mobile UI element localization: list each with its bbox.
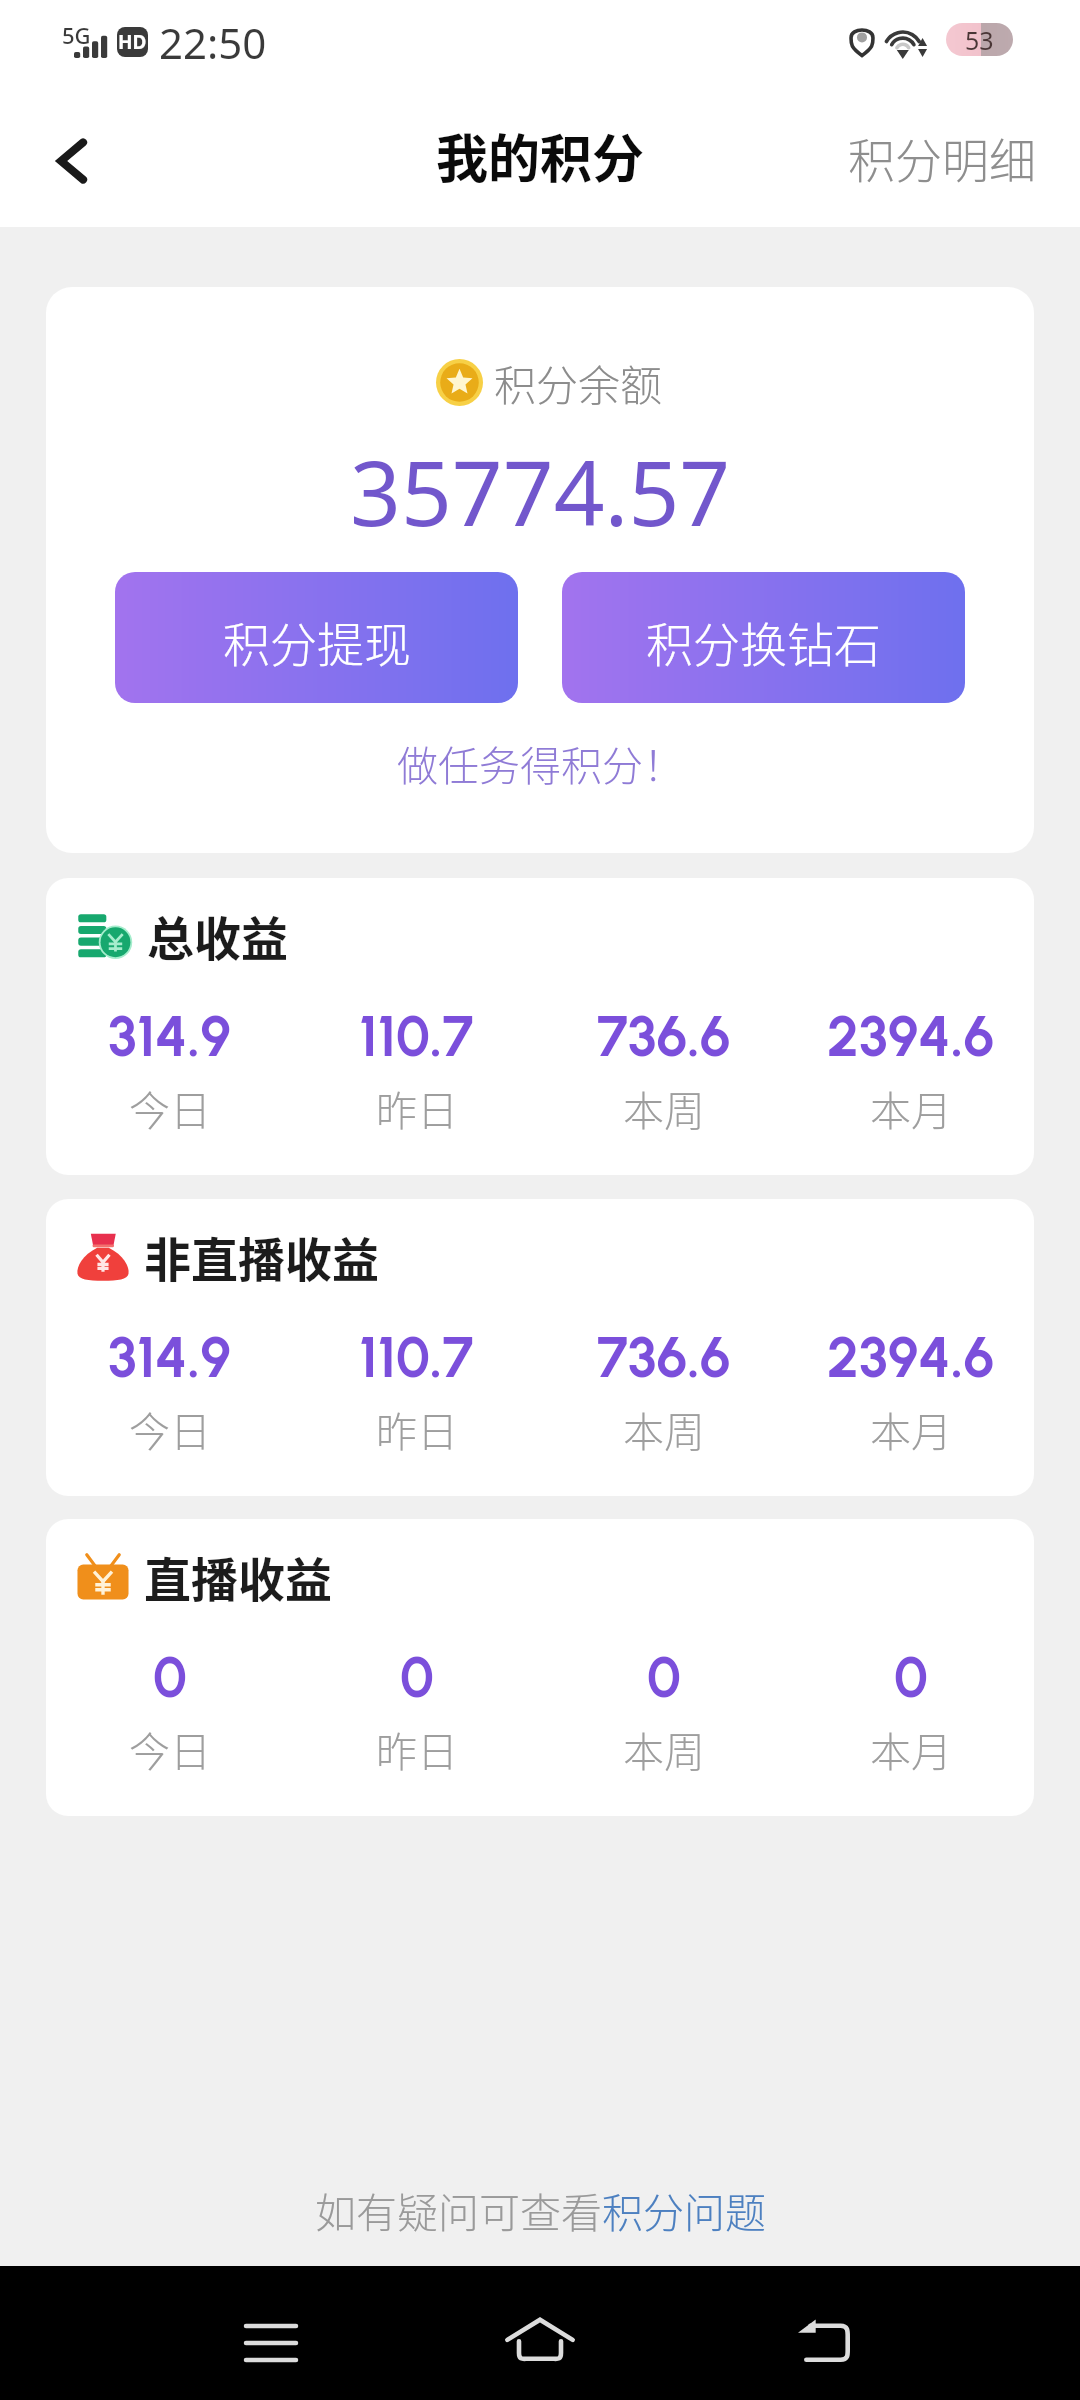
staticText: 积分余额 <box>494 352 663 413</box>
staticText: 今日 <box>129 1719 211 1778</box>
staticText: 昨日 <box>376 1078 458 1137</box>
staticText: 做任务得积分！ <box>397 733 684 792</box>
staticText: 如有疑问可查看 <box>315 2180 602 2239</box>
staticText: 314.9 <box>108 1324 231 1391</box>
button[interactable]: 积分提现 <box>115 572 518 703</box>
staticText: 本月 <box>870 1399 952 1458</box>
staticText: 0 <box>400 1644 434 1711</box>
staticText: 积分问题 <box>602 2180 766 2239</box>
staticText: 2394.6 <box>827 1324 995 1391</box>
staticText: 736.6 <box>597 1324 731 1391</box>
staticText: 736.6 <box>597 1003 731 1070</box>
button[interactable]: 积分问题 <box>602 2180 766 2239</box>
staticText: 积分提现 <box>223 607 411 675</box>
staticText: 积分明细 <box>848 123 1036 191</box>
staticText: 2394.6 <box>827 1003 995 1070</box>
staticText: 110.7 <box>359 1324 474 1391</box>
button[interactable]: Recents <box>211 2283 331 2400</box>
staticText: 本周 <box>623 1078 705 1137</box>
staticText: 积分换钻石 <box>646 607 881 675</box>
staticText: 昨日 <box>376 1399 458 1458</box>
staticText: 昨日 <box>376 1719 458 1778</box>
staticText: 本周 <box>623 1719 705 1778</box>
button[interactable]: Back <box>27 115 119 207</box>
staticText: 110.7 <box>359 1003 474 1070</box>
staticText: 0 <box>647 1644 681 1711</box>
staticText: 22:50 <box>159 14 267 71</box>
button[interactable]: 积分明细 <box>848 123 1036 191</box>
staticText: 53 <box>965 23 994 56</box>
button[interactable]: Back <box>764 2280 884 2400</box>
staticText: 本月 <box>870 1719 952 1778</box>
button[interactable]: 积分换钻石 <box>562 572 965 703</box>
staticText: 0 <box>153 1644 187 1711</box>
staticText: 35774.57 <box>350 431 731 552</box>
staticText: 314.9 <box>108 1003 231 1070</box>
staticText: HD <box>118 29 147 55</box>
staticText: 5G <box>62 20 91 50</box>
staticText: 今日 <box>129 1078 211 1137</box>
button[interactable]: Home <box>480 2279 600 2399</box>
staticText: 0 <box>894 1644 928 1711</box>
staticText: 非直播收益 <box>144 1222 379 1290</box>
staticText: 我的积分 <box>436 118 645 193</box>
staticText: 总收益 <box>147 901 288 969</box>
staticText: 今日 <box>129 1399 211 1458</box>
staticText: 本月 <box>870 1078 952 1137</box>
staticText: 本周 <box>623 1399 705 1458</box>
staticText: 直播收益 <box>144 1542 332 1610</box>
